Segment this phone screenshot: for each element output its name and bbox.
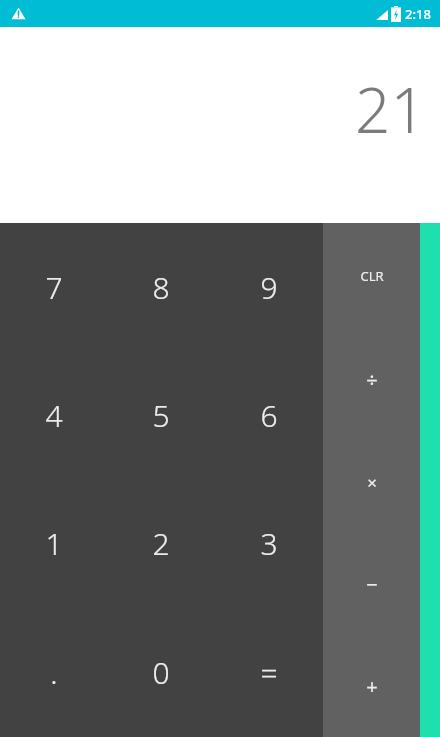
staticText: − bbox=[366, 571, 378, 598]
staticText: 21 bbox=[355, 67, 426, 151]
staticText: 1 bbox=[45, 523, 63, 564]
staticText: 9 bbox=[260, 267, 278, 308]
staticText: × bbox=[367, 471, 377, 494]
button[interactable]: 7 bbox=[0, 223, 107, 351]
staticText: 6 bbox=[260, 395, 278, 436]
staticText: 3 bbox=[260, 523, 278, 564]
staticText: 7 bbox=[45, 267, 63, 308]
button[interactable]: × bbox=[323, 431, 420, 533]
button[interactable]: . bbox=[0, 608, 107, 737]
staticText: 4 bbox=[45, 395, 63, 436]
staticText: 2 bbox=[152, 523, 170, 564]
button[interactable]: 4 bbox=[0, 351, 107, 479]
button[interactable]: 6 bbox=[215, 351, 323, 479]
button[interactable]: 5 bbox=[107, 351, 215, 479]
button[interactable]: CLR bbox=[323, 223, 420, 328]
staticText: + bbox=[366, 673, 378, 700]
staticText: 8 bbox=[152, 267, 170, 308]
staticText: ÷ bbox=[366, 366, 378, 393]
other: Warning bbox=[11, 6, 26, 21]
button[interactable]: ÷ bbox=[323, 328, 420, 431]
staticText: . bbox=[50, 652, 58, 693]
button[interactable]: 2 bbox=[107, 479, 215, 608]
staticText: 0 bbox=[152, 652, 170, 693]
button[interactable]: − bbox=[323, 533, 420, 635]
button[interactable]: 9 bbox=[215, 223, 323, 351]
staticText: 5 bbox=[152, 395, 170, 436]
button[interactable]: 3 bbox=[215, 479, 323, 608]
button[interactable]: = bbox=[215, 608, 323, 737]
button[interactable]: 8 bbox=[107, 223, 215, 351]
staticText: CLR bbox=[360, 267, 384, 285]
staticText: = bbox=[260, 652, 278, 693]
staticText: 2:18 bbox=[405, 5, 431, 23]
button[interactable]: 0 bbox=[107, 608, 215, 737]
button[interactable]: 1 bbox=[0, 479, 107, 608]
button[interactable]: + bbox=[323, 635, 420, 737]
